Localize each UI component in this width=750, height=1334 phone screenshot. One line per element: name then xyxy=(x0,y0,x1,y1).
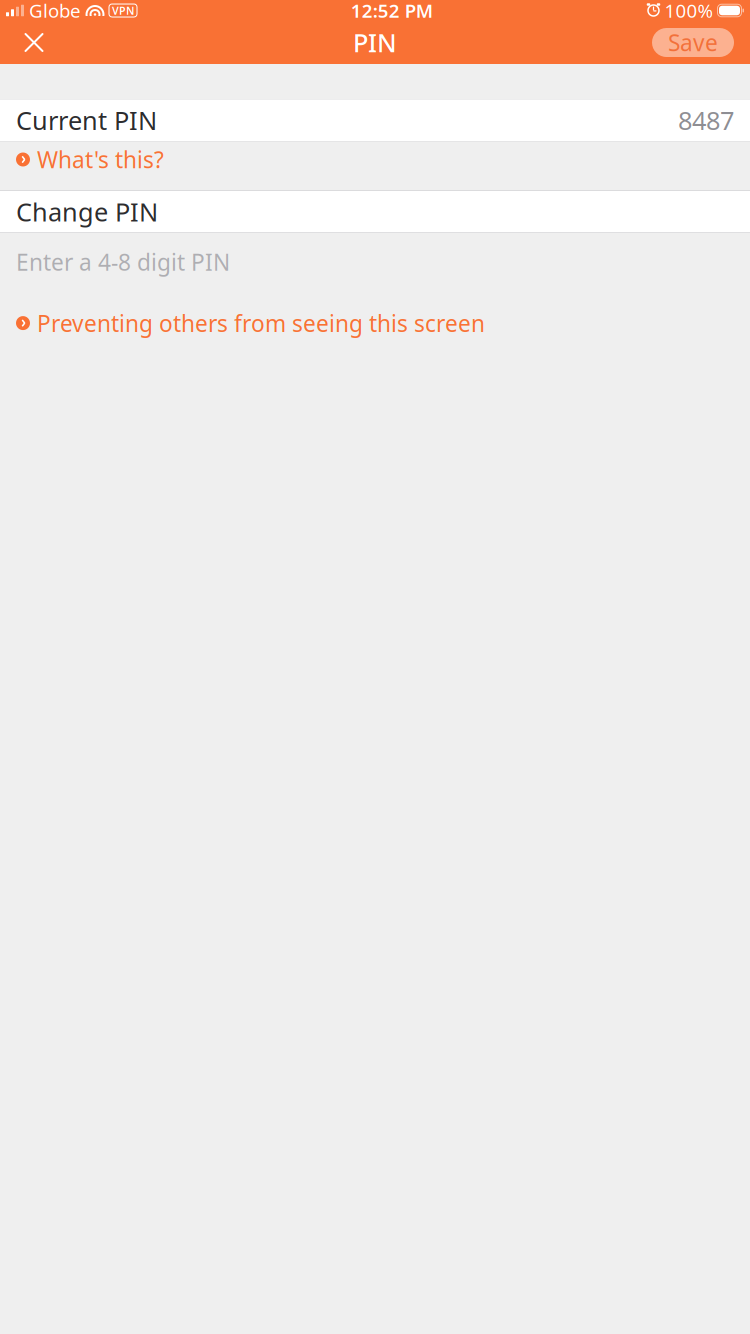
staticText: 12:52 PM xyxy=(351,0,433,23)
button[interactable]: Save xyxy=(652,28,734,57)
staticText: What's this? xyxy=(37,144,164,174)
staticText: Preventing others from seeing this scree… xyxy=(37,308,485,338)
staticText: PIN xyxy=(353,26,397,59)
staticText: Change PIN xyxy=(16,195,158,228)
staticText: 8487 xyxy=(678,103,734,137)
button[interactable]: Preventing others from seeing this scree… xyxy=(0,307,750,339)
staticText: Enter a 4-8 digit PIN xyxy=(16,247,230,277)
button[interactable]: What's this? xyxy=(0,143,750,175)
button[interactable]: Close xyxy=(10,21,58,64)
staticText: 100% xyxy=(664,0,713,23)
staticText: Globe xyxy=(29,0,81,23)
staticText: VPN xyxy=(112,3,134,18)
staticText: Current PIN xyxy=(16,103,157,137)
button[interactable]: Current PIN xyxy=(0,99,750,141)
staticText: Save xyxy=(668,27,718,57)
button[interactable]: Change PIN xyxy=(0,191,750,232)
